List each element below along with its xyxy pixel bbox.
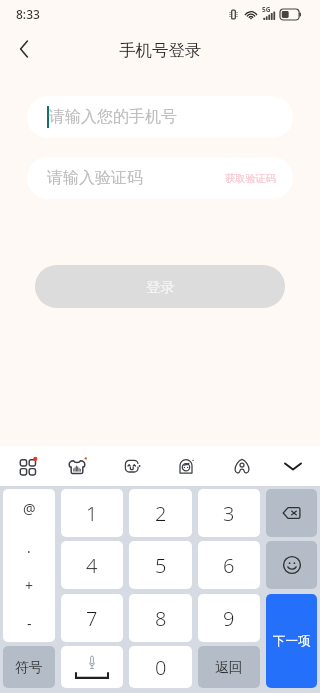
- staticText: 8:33: [16, 6, 40, 22]
- button[interactable]: 7: [61, 594, 123, 642]
- button[interactable]: 请输入您的手机号: [27, 96, 293, 138]
- staticText: 获取验证码: [225, 172, 276, 185]
- staticText: 9: [223, 605, 235, 632]
- button[interactable]: 9: [198, 594, 260, 642]
- button[interactable]: [266, 489, 317, 537]
- button[interactable]: 3: [198, 489, 260, 537]
- button[interactable]: 符号: [3, 646, 55, 688]
- staticText: 下一项: [273, 633, 311, 649]
- staticText: 返回: [215, 659, 243, 676]
- staticText: @: [23, 499, 36, 518]
- button[interactable]: 1: [61, 489, 123, 537]
- button[interactable]: +: [3, 566, 55, 604]
- button[interactable]: Voice assistant: [218, 446, 266, 486]
- button[interactable]: Themes: [53, 446, 101, 486]
- button[interactable]: @: [3, 489, 55, 528]
- staticText: 8: [155, 605, 167, 632]
- button[interactable]: 8: [129, 594, 192, 642]
- button[interactable]: Back: [7, 31, 43, 67]
- button[interactable]: 4: [61, 541, 123, 589]
- button[interactable]: 登录: [35, 265, 285, 308]
- staticText: 5: [155, 552, 167, 579]
- staticText: +: [25, 576, 34, 595]
- button[interactable]: Keyboard layouts: [4, 446, 52, 486]
- button[interactable]: Emoticons: [108, 446, 156, 486]
- button[interactable]: 返回: [198, 646, 260, 688]
- staticText: 6: [223, 552, 235, 579]
- button[interactable]: Stickers: [162, 446, 210, 486]
- staticText: .: [27, 538, 31, 557]
- staticText: 4: [86, 552, 98, 579]
- staticText: 0: [155, 654, 167, 681]
- button[interactable]: 5: [129, 541, 192, 589]
- staticText: 请输入您的手机号: [49, 107, 177, 127]
- button[interactable]: [266, 541, 317, 589]
- staticText: -: [27, 614, 32, 633]
- button[interactable]: .: [3, 528, 55, 566]
- button[interactable]: Hide keyboard: [269, 446, 317, 486]
- staticText: 5G: [262, 5, 271, 14]
- button[interactable]: 下一项: [266, 594, 317, 688]
- staticText: 登录: [146, 278, 175, 296]
- staticText: 7: [86, 605, 98, 632]
- staticText: 手机号登录: [119, 40, 202, 61]
- button[interactable]: 0: [129, 646, 192, 688]
- staticText: 请输入验证码: [47, 168, 143, 188]
- staticText: 1: [86, 500, 98, 527]
- button[interactable]: 6: [198, 541, 260, 589]
- staticText: 2: [155, 500, 167, 527]
- button[interactable]: 请输入验证码: [27, 157, 293, 199]
- staticText: 符号: [15, 659, 43, 676]
- button[interactable]: [61, 646, 123, 688]
- button[interactable]: 2: [129, 489, 192, 537]
- button[interactable]: -: [3, 604, 55, 642]
- staticText: 3: [223, 500, 235, 527]
